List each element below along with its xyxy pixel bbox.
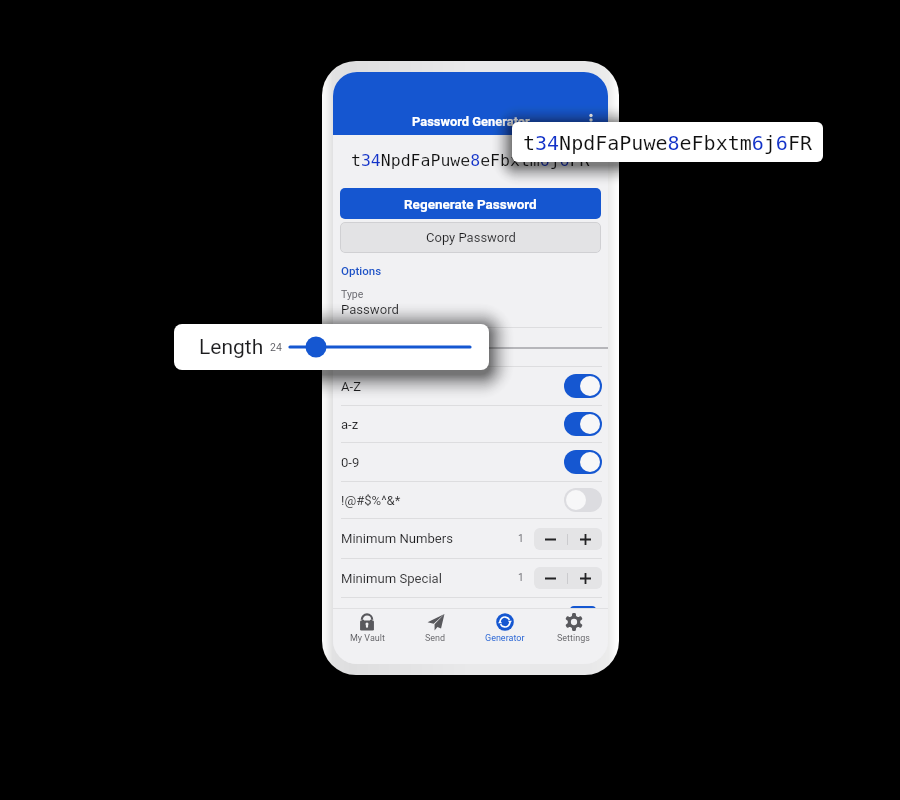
button[interactable]: Generator (470, 613, 539, 664)
staticText: 0-9 (341, 455, 360, 470)
button[interactable]: Increase Minimum Special (568, 567, 602, 589)
staticText: Send (425, 633, 446, 644)
button[interactable]: Regenerate Password (340, 188, 601, 219)
staticText: !@#$%^&* (341, 493, 401, 508)
staticText: Length (341, 340, 382, 355)
staticText: Settings (557, 633, 590, 644)
button[interactable]: Save (570, 606, 596, 626)
staticText: Password (341, 302, 399, 317)
staticText: Copy Password (426, 230, 516, 245)
staticText: A-Z (341, 379, 362, 394)
staticText: 1 (518, 572, 524, 584)
button[interactable]: Decrease Minimum Special (534, 567, 567, 589)
staticText: t34NpdFaPuwe8eFbxtm6j6FR (351, 151, 590, 170)
staticText: Type (341, 288, 364, 300)
button[interactable]: t34NpdFaPuwe8eFbxtm6j6FR (512, 122, 823, 162)
button[interactable]: !@#$%^&* (333, 482, 608, 518)
button[interactable]: My Vault (333, 613, 401, 664)
staticText: My Vault (350, 633, 385, 644)
staticText: 24 (270, 341, 282, 353)
staticText: Minimum Numbers (341, 531, 453, 546)
button[interactable]: Length (174, 324, 489, 370)
staticText: Generator (485, 633, 525, 644)
button[interactable]: More options (580, 109, 602, 131)
button[interactable]: 0-9 (333, 443, 608, 481)
staticText: 1 (518, 533, 524, 545)
staticText: Options (341, 264, 382, 277)
button[interactable]: Decrease Minimum Numbers (534, 528, 567, 550)
button[interactable]: Length (333, 328, 608, 366)
button[interactable]: a-z (333, 406, 608, 442)
button[interactable]: Send (401, 613, 470, 664)
staticText: Minimum Special (341, 571, 442, 586)
button[interactable]: Settings (539, 613, 608, 664)
staticText: a-z (341, 417, 359, 432)
button[interactable]: Increase Minimum Numbers (568, 528, 602, 550)
button[interactable]: A-Z (333, 367, 608, 405)
staticText: Regenerate Password (404, 196, 537, 212)
button[interactable]: Copy Password (340, 222, 601, 253)
staticText: t34NpdFaPuwe8eFbxtm6j6FR (523, 131, 812, 154)
staticText: Length (199, 335, 264, 360)
staticText: Password Generator (412, 114, 530, 129)
